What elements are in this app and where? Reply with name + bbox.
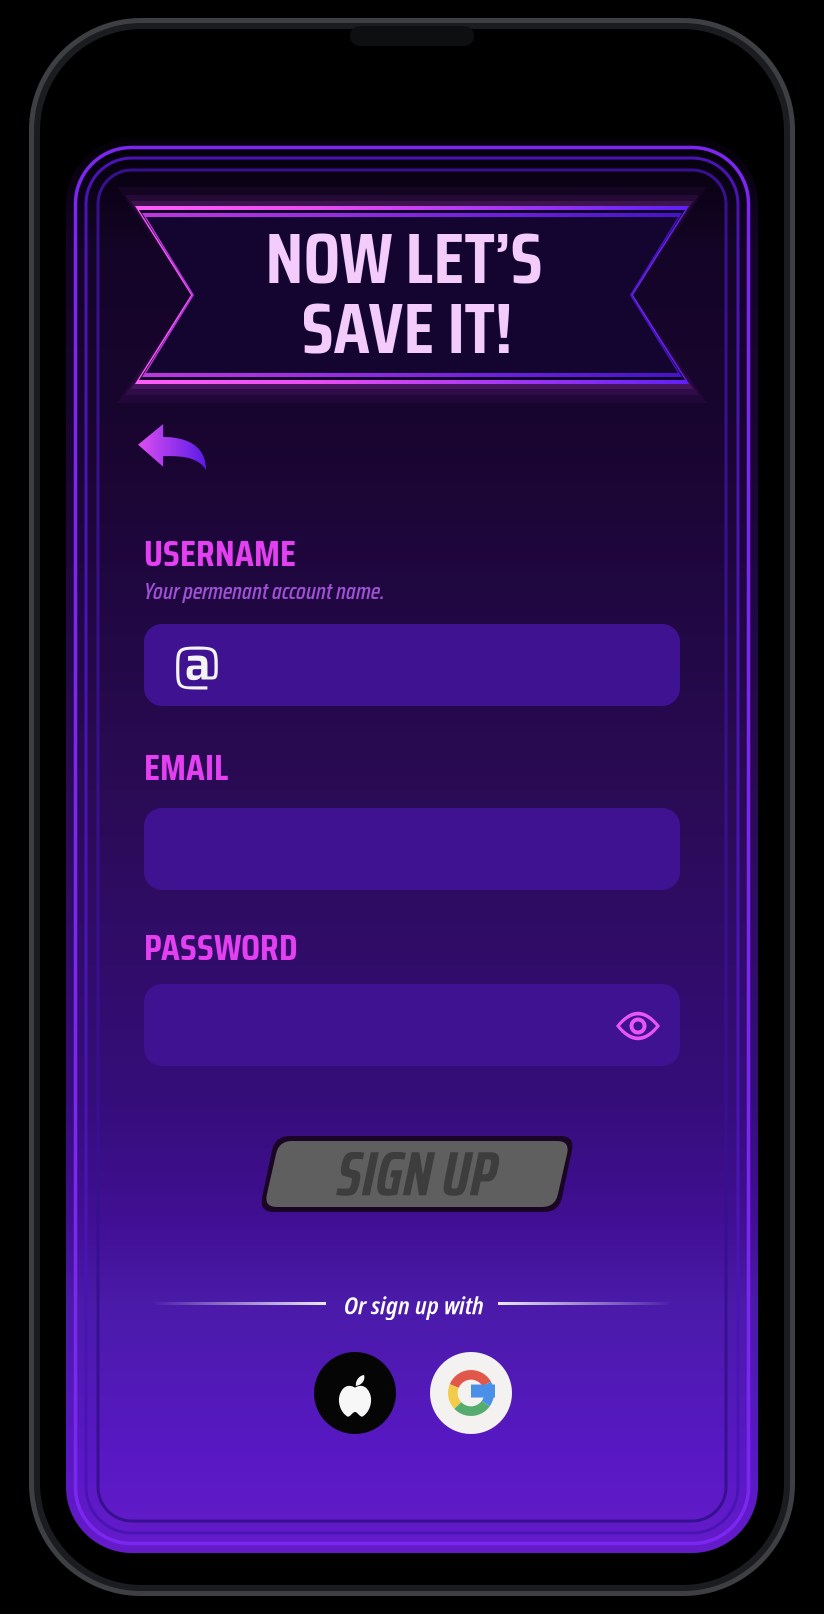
staticText: SAVE IT! bbox=[301, 271, 512, 385]
button[interactable]: Sign up with Apple bbox=[314, 1352, 396, 1434]
button[interactable]: Show password bbox=[612, 1000, 664, 1052]
staticText: @ bbox=[172, 623, 222, 707]
staticText: SIGN UP bbox=[337, 1126, 497, 1222]
staticText: PASSWORD bbox=[144, 918, 298, 976]
staticText: NOW LET’S bbox=[265, 201, 542, 315]
staticText: USERNAME bbox=[144, 524, 296, 582]
staticText: Or sign up with bbox=[344, 1289, 484, 1321]
staticText: Your permenant account name. bbox=[144, 573, 385, 609]
button[interactable]: Back bbox=[138, 424, 206, 470]
button[interactable]: SIGN UP bbox=[259, 1136, 575, 1212]
staticText: EMAIL bbox=[144, 738, 228, 796]
button[interactable]: Sign up with Google bbox=[430, 1352, 512, 1434]
